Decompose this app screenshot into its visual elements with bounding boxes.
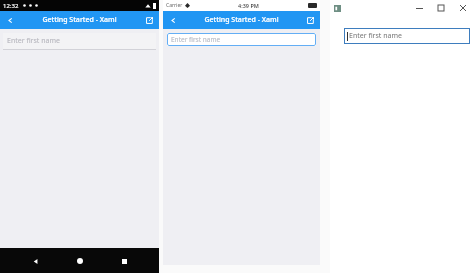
button[interactable]: Open external link bbox=[304, 14, 316, 26]
staticText: Enter first name bbox=[171, 35, 221, 44]
button[interactable]: Minimize bbox=[408, 0, 430, 16]
staticText: Carrier bbox=[166, 2, 183, 9]
button[interactable]: Back bbox=[4, 14, 16, 26]
staticText: Getting Started - Xaml bbox=[204, 15, 279, 25]
button[interactable]: Open external link bbox=[143, 14, 155, 26]
button[interactable]: Enter first name bbox=[3, 33, 156, 49]
button[interactable]: Back bbox=[25, 251, 45, 271]
button[interactable]: Enter first name bbox=[167, 33, 316, 46]
staticText: Enter first name bbox=[349, 31, 402, 41]
button[interactable]: Close bbox=[452, 0, 474, 16]
button[interactable]: Back bbox=[167, 14, 179, 26]
button[interactable]: Maximize bbox=[430, 0, 452, 16]
staticText: Enter first name bbox=[7, 36, 60, 46]
staticText: 4:39 PM bbox=[238, 2, 259, 9]
staticText: 12:32 bbox=[3, 2, 19, 10]
staticText: Getting Started - Xaml bbox=[42, 15, 117, 25]
button[interactable]: Enter first name bbox=[344, 28, 470, 44]
button[interactable]: Home bbox=[70, 251, 90, 271]
button[interactable]: Recents bbox=[114, 251, 134, 271]
